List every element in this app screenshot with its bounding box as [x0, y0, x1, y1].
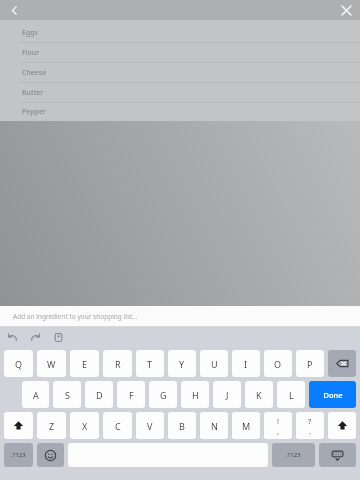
staticText: Pepper: [22, 107, 46, 117]
button[interactable]: O: [264, 350, 292, 377]
staticText: Eggs: [22, 28, 38, 38]
staticText: .?123: [11, 451, 26, 459]
staticText: C: [115, 420, 121, 432]
button[interactable]: J: [213, 381, 241, 408]
button[interactable]: !: [264, 412, 292, 439]
staticText: M: [242, 420, 251, 432]
button[interactable]: Close: [332, 0, 360, 20]
button[interactable]: N: [200, 412, 228, 439]
staticText: O: [274, 358, 282, 370]
staticText: ,: [277, 426, 280, 436]
button[interactable]: I: [232, 350, 260, 377]
staticText: Done: [323, 390, 343, 400]
staticText: ?: [308, 416, 312, 426]
button[interactable]: C: [103, 412, 132, 439]
staticText: V: [147, 420, 153, 432]
staticText: R: [115, 358, 121, 370]
staticText: H: [192, 389, 199, 401]
button[interactable]: .?123: [4, 443, 33, 467]
button[interactable]: Cheese: [0, 63, 360, 82]
staticText: Z: [49, 420, 55, 432]
staticText: .: [309, 426, 312, 436]
staticText: B: [179, 420, 185, 432]
staticText: L: [289, 389, 294, 401]
staticText: .?123: [286, 451, 301, 459]
button[interactable]: P: [296, 350, 324, 377]
button[interactable]: D: [85, 381, 113, 408]
button[interactable]: Z: [37, 412, 66, 439]
button[interactable]: Paste: [50, 329, 67, 346]
staticText: F: [129, 389, 134, 401]
staticText: N: [211, 420, 218, 432]
staticText: !: [277, 416, 280, 426]
button[interactable]: A: [22, 381, 49, 408]
staticText: Y: [179, 358, 185, 370]
button[interactable]: U: [200, 350, 228, 377]
staticText: G: [160, 389, 167, 401]
button[interactable]: .?123: [272, 443, 315, 467]
button[interactable]: Done: [309, 381, 356, 408]
button[interactable]: Shift: [4, 412, 33, 439]
staticText: Flour: [22, 48, 40, 58]
button[interactable]: Y: [168, 350, 196, 377]
button[interactable]: G: [149, 381, 177, 408]
button[interactable]: Emoji: [37, 443, 64, 467]
staticText: X: [82, 420, 88, 432]
button[interactable]: H: [181, 381, 209, 408]
button[interactable]: E: [70, 350, 99, 377]
button[interactable]: S: [53, 381, 81, 408]
button[interactable]: R: [103, 350, 132, 377]
button[interactable]: F: [117, 381, 145, 408]
button[interactable]: Butter: [0, 83, 360, 102]
staticText: S: [65, 389, 70, 401]
button[interactable]: T: [136, 350, 164, 377]
button[interactable]: Pepper: [0, 103, 360, 121]
button[interactable]: ?: [296, 412, 324, 439]
button[interactable]: Hide keyboard: [319, 443, 356, 467]
button[interactable]: Eggs: [0, 23, 360, 42]
button[interactable]: W: [37, 350, 66, 377]
button[interactable]: Undo: [4, 329, 21, 346]
staticText: Add an ingredient to your shopping list.…: [13, 312, 138, 321]
staticText: J: [226, 389, 229, 401]
button[interactable]: Shift: [328, 412, 356, 439]
button[interactable]: K: [245, 381, 273, 408]
staticText: D: [96, 389, 103, 401]
staticText: E: [82, 358, 88, 370]
button[interactable]: Redo: [27, 329, 44, 346]
staticText: Cheese: [22, 68, 47, 78]
button[interactable]: Add an ingredient to your shopping list.…: [0, 306, 360, 326]
staticText: W: [47, 358, 56, 370]
staticText: T: [147, 358, 153, 370]
staticText: Q: [15, 358, 23, 370]
button[interactable]: Back: [0, 0, 28, 20]
button[interactable]: L: [277, 381, 305, 408]
staticText: Butter: [22, 88, 44, 98]
button[interactable]: M: [232, 412, 260, 439]
button[interactable]: B: [168, 412, 196, 439]
staticText: P: [307, 358, 313, 370]
button[interactable]: X: [70, 412, 99, 439]
staticText: I: [244, 358, 248, 370]
button[interactable]: Delete: [328, 350, 356, 377]
button[interactable]: Q: [4, 350, 33, 377]
staticText: A: [33, 389, 39, 401]
staticText: U: [211, 358, 218, 370]
staticText: K: [256, 389, 262, 401]
button[interactable]: V: [136, 412, 164, 439]
